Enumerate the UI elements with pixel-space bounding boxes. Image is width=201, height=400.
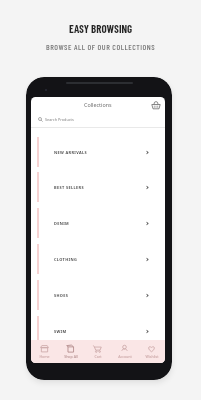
staticText: Home [39, 354, 50, 359]
staticText: Wishlist [145, 354, 159, 359]
button[interactable]: CLOTHING [31, 241, 165, 277]
staticText: CLOTHING [54, 257, 78, 262]
button[interactable]: SHOES [31, 277, 165, 313]
button[interactable]: Shop All [57, 340, 84, 363]
button[interactable]: Account [111, 340, 138, 363]
staticText: SHOES [54, 293, 69, 298]
button[interactable]: Cart [84, 340, 111, 363]
staticText: BEST SELLERS [54, 185, 84, 190]
button[interactable]: SWIM [31, 313, 165, 340]
button[interactable]: NEW ARRIVALS [31, 134, 165, 170]
staticText: NEW ARRIVALS [54, 150, 88, 155]
staticText: Shop All [64, 354, 78, 359]
button[interactable]: Search Products [38, 112, 165, 127]
staticText: Collections [84, 101, 112, 108]
staticText: Account [118, 354, 132, 359]
button[interactable]: Shopping cart [151, 100, 161, 110]
button[interactable]: DENIM [31, 205, 165, 241]
staticText: EASY BROWSING [69, 22, 133, 35]
button[interactable]: Wishlist [138, 340, 165, 363]
staticText: Cart [94, 354, 102, 359]
button[interactable]: Home [31, 340, 57, 363]
staticText: BROWSE ALL OF OUR COLLECTIONS [46, 42, 156, 52]
button[interactable]: BEST SELLERS [31, 169, 165, 205]
staticText: Search Products [45, 117, 74, 122]
staticText: SWIM [54, 329, 67, 334]
staticText: DENIM [54, 221, 70, 226]
